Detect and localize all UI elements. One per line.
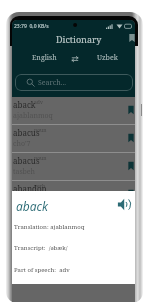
button[interactable]: Bookmark abacus (123, 130, 135, 146)
staticText: aback (16, 198, 48, 214)
button[interactable]: abacus (12, 125, 135, 153)
staticText: noun (34, 155, 47, 162)
button[interactable]: Search... (15, 74, 133, 91)
button[interactable]: Bookmark aback (123, 102, 135, 118)
staticText: Uzbek (97, 53, 118, 63)
button[interactable]: Bookmark abandon (123, 186, 135, 202)
staticText: abacus (13, 127, 40, 138)
staticText: Transcript: /əbæk/ (14, 244, 68, 252)
staticText: aback (13, 99, 36, 110)
staticText: 23:79 0,0 KB/s (14, 23, 49, 30)
button[interactable]: Saved words (124, 30, 135, 46)
button[interactable]: aback (12, 97, 135, 125)
staticText: abandon (13, 183, 47, 194)
staticText: adv (34, 99, 43, 106)
staticText: tasbeh (13, 167, 36, 177)
staticText: Translation: ajablanmoq (14, 223, 85, 231)
button[interactable]: abacus (12, 153, 135, 181)
staticText: Search... (38, 78, 66, 88)
staticText: verb (34, 183, 45, 190)
staticText: noun (34, 127, 47, 134)
button[interactable]: Pronounce (117, 197, 132, 212)
staticText: abacus (13, 155, 40, 166)
button[interactable]: abandon (12, 181, 135, 209)
staticText: ajablanmoq (13, 111, 53, 121)
staticText: Dictionary (56, 33, 102, 45)
staticText: cho'7 (13, 139, 31, 149)
staticText: Part of speech: adv (14, 266, 70, 274)
staticText: English (32, 53, 57, 63)
button[interactable]: Swap languages (69, 53, 81, 65)
button[interactable]: Bookmark abacus (123, 158, 135, 174)
staticText: tark etmoq (13, 195, 50, 205)
